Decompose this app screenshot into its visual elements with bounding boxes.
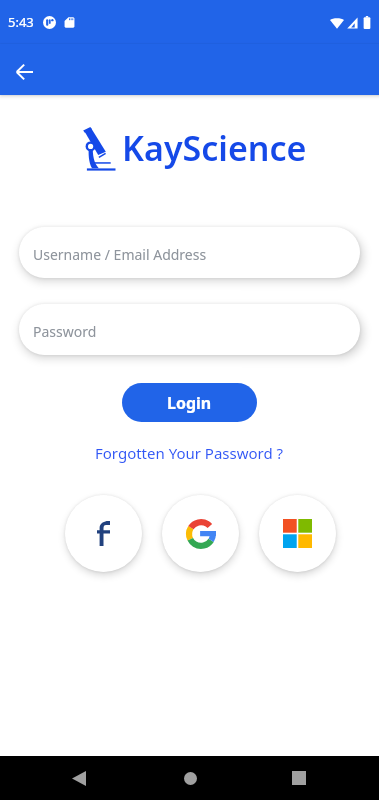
button[interactable]: Home — [168, 756, 212, 800]
staticText: Forgotten Your Password ? — [95, 443, 284, 463]
staticText: 5:43 — [8, 13, 34, 31]
button[interactable]: Sign in with Google — [162, 495, 239, 572]
button[interactable]: Forgotten Your Password ? — [95, 443, 284, 463]
button[interactable]: Back — [57, 756, 101, 800]
button[interactable]: Recent apps — [277, 756, 321, 800]
button[interactable]: Password — [19, 304, 360, 355]
staticText: KayScience — [122, 125, 307, 171]
button[interactable]: Username / Email Address — [19, 227, 360, 278]
button[interactable]: Sign in with Microsoft — [259, 495, 336, 572]
staticText: Login — [167, 392, 212, 414]
button[interactable]: Login — [122, 383, 257, 422]
staticText: Password — [33, 322, 97, 341]
button[interactable]: Sign in with Facebook — [65, 495, 142, 572]
button[interactable]: Back — [2, 48, 46, 92]
staticText: Username / Email Address — [33, 245, 207, 264]
